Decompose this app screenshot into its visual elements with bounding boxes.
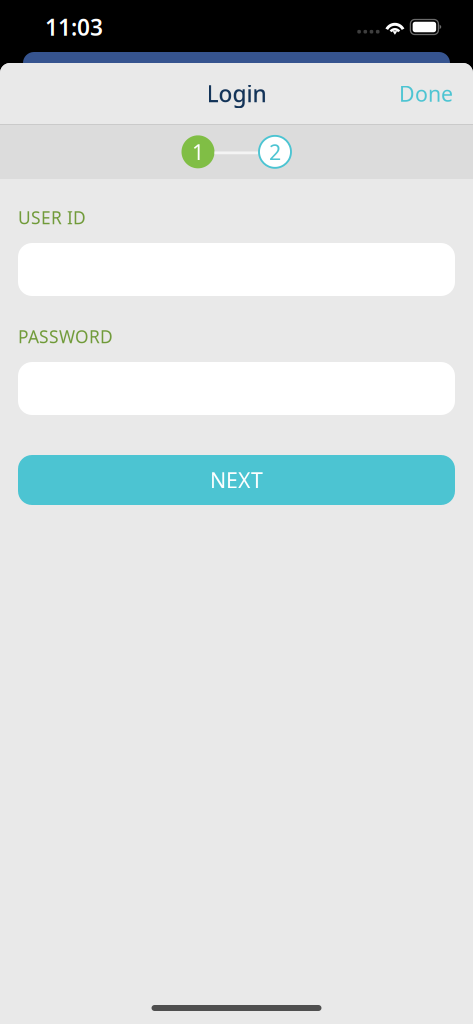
staticText: 1 bbox=[192, 138, 204, 166]
button[interactable]: Done bbox=[383, 68, 473, 119]
button[interactable]: Step 2 bbox=[258, 135, 291, 168]
staticText: Login bbox=[206, 78, 266, 108]
staticText: NEXT bbox=[210, 466, 263, 494]
staticText: Done bbox=[399, 79, 453, 108]
button[interactable]: NEXT bbox=[18, 455, 455, 505]
staticText: USER ID bbox=[18, 206, 86, 229]
staticText: PASSWORD bbox=[18, 325, 113, 348]
staticText: 2 bbox=[269, 138, 281, 166]
staticText: 11:03 bbox=[45, 12, 103, 42]
button[interactable]: Step 1, completed bbox=[181, 135, 214, 168]
